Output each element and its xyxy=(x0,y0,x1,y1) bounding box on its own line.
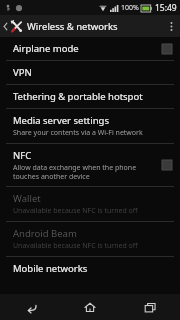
button[interactable]: Wallet xyxy=(0,187,180,221)
button[interactable]: Home xyxy=(60,294,120,320)
staticText: Mobile networks xyxy=(13,262,88,275)
button[interactable]: NFC xyxy=(0,144,180,186)
staticText: Wireless & networks xyxy=(27,20,118,33)
button[interactable]: Tethering & portable hotspot xyxy=(0,85,180,108)
button[interactable]: Up, Settings xyxy=(0,20,122,33)
staticText: Tethering & portable hotspot xyxy=(13,90,143,103)
button[interactable]: More options xyxy=(162,15,180,37)
staticText: Media server settings xyxy=(13,114,109,127)
button[interactable]: Airplane mode xyxy=(0,37,180,60)
staticText: Android Beam xyxy=(13,227,77,240)
staticText: VPN xyxy=(13,66,32,79)
button[interactable]: Back xyxy=(0,294,60,320)
button[interactable]: Mobile networks xyxy=(0,257,180,280)
staticText: Airplane mode xyxy=(13,42,79,55)
staticText: 15:49 xyxy=(155,2,177,14)
button[interactable]: VPN xyxy=(0,61,180,84)
staticText: Wallet xyxy=(13,192,41,205)
button[interactable]: Media server settings xyxy=(0,109,180,143)
staticText: Allow data exchange when the phone touch… xyxy=(13,163,137,181)
staticText: 100% xyxy=(121,3,139,13)
staticText: Share your contents via a Wi-Fi network xyxy=(13,128,143,138)
staticText: Unavailable because NFC is turned off xyxy=(13,241,138,251)
button[interactable]: Recent apps xyxy=(120,294,180,320)
button[interactable]: Android Beam xyxy=(0,222,180,256)
staticText: Unavailable because NFC is turned off xyxy=(13,206,138,216)
staticText: NFC xyxy=(13,149,32,162)
